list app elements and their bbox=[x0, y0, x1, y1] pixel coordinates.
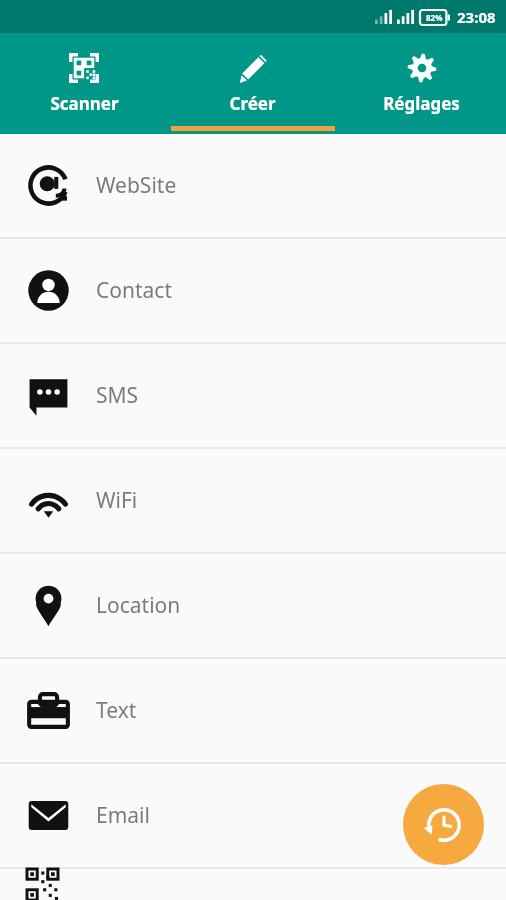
button[interactable] bbox=[0, 869, 506, 900]
button[interactable]: Location bbox=[0, 554, 506, 657]
button[interactable]: Contact bbox=[0, 239, 506, 342]
staticText: WebSite bbox=[96, 171, 177, 200]
staticText: Créer bbox=[229, 92, 276, 115]
button[interactable]: Réglages bbox=[337, 33, 506, 134]
staticText: 82% bbox=[426, 12, 443, 23]
button[interactable]: Créer bbox=[168, 33, 337, 134]
staticText: Email bbox=[96, 801, 150, 830]
button[interactable]: Text bbox=[0, 659, 506, 762]
staticText: Contact bbox=[96, 276, 172, 305]
button[interactable]: WiFi bbox=[0, 449, 506, 552]
button[interactable]: Scanner bbox=[0, 33, 168, 134]
staticText: SMS bbox=[96, 381, 139, 410]
button[interactable]: WebSite bbox=[0, 134, 506, 237]
staticText: 23:08 bbox=[457, 7, 496, 27]
staticText: Text bbox=[96, 696, 137, 725]
button[interactable]: Historique bbox=[403, 784, 484, 865]
staticText: Réglages bbox=[383, 92, 460, 115]
button[interactable]: SMS bbox=[0, 344, 506, 447]
staticText: Location bbox=[96, 591, 181, 620]
staticText: WiFi bbox=[96, 486, 138, 515]
staticText: Scanner bbox=[50, 92, 119, 115]
button[interactable]: Email bbox=[0, 764, 506, 867]
